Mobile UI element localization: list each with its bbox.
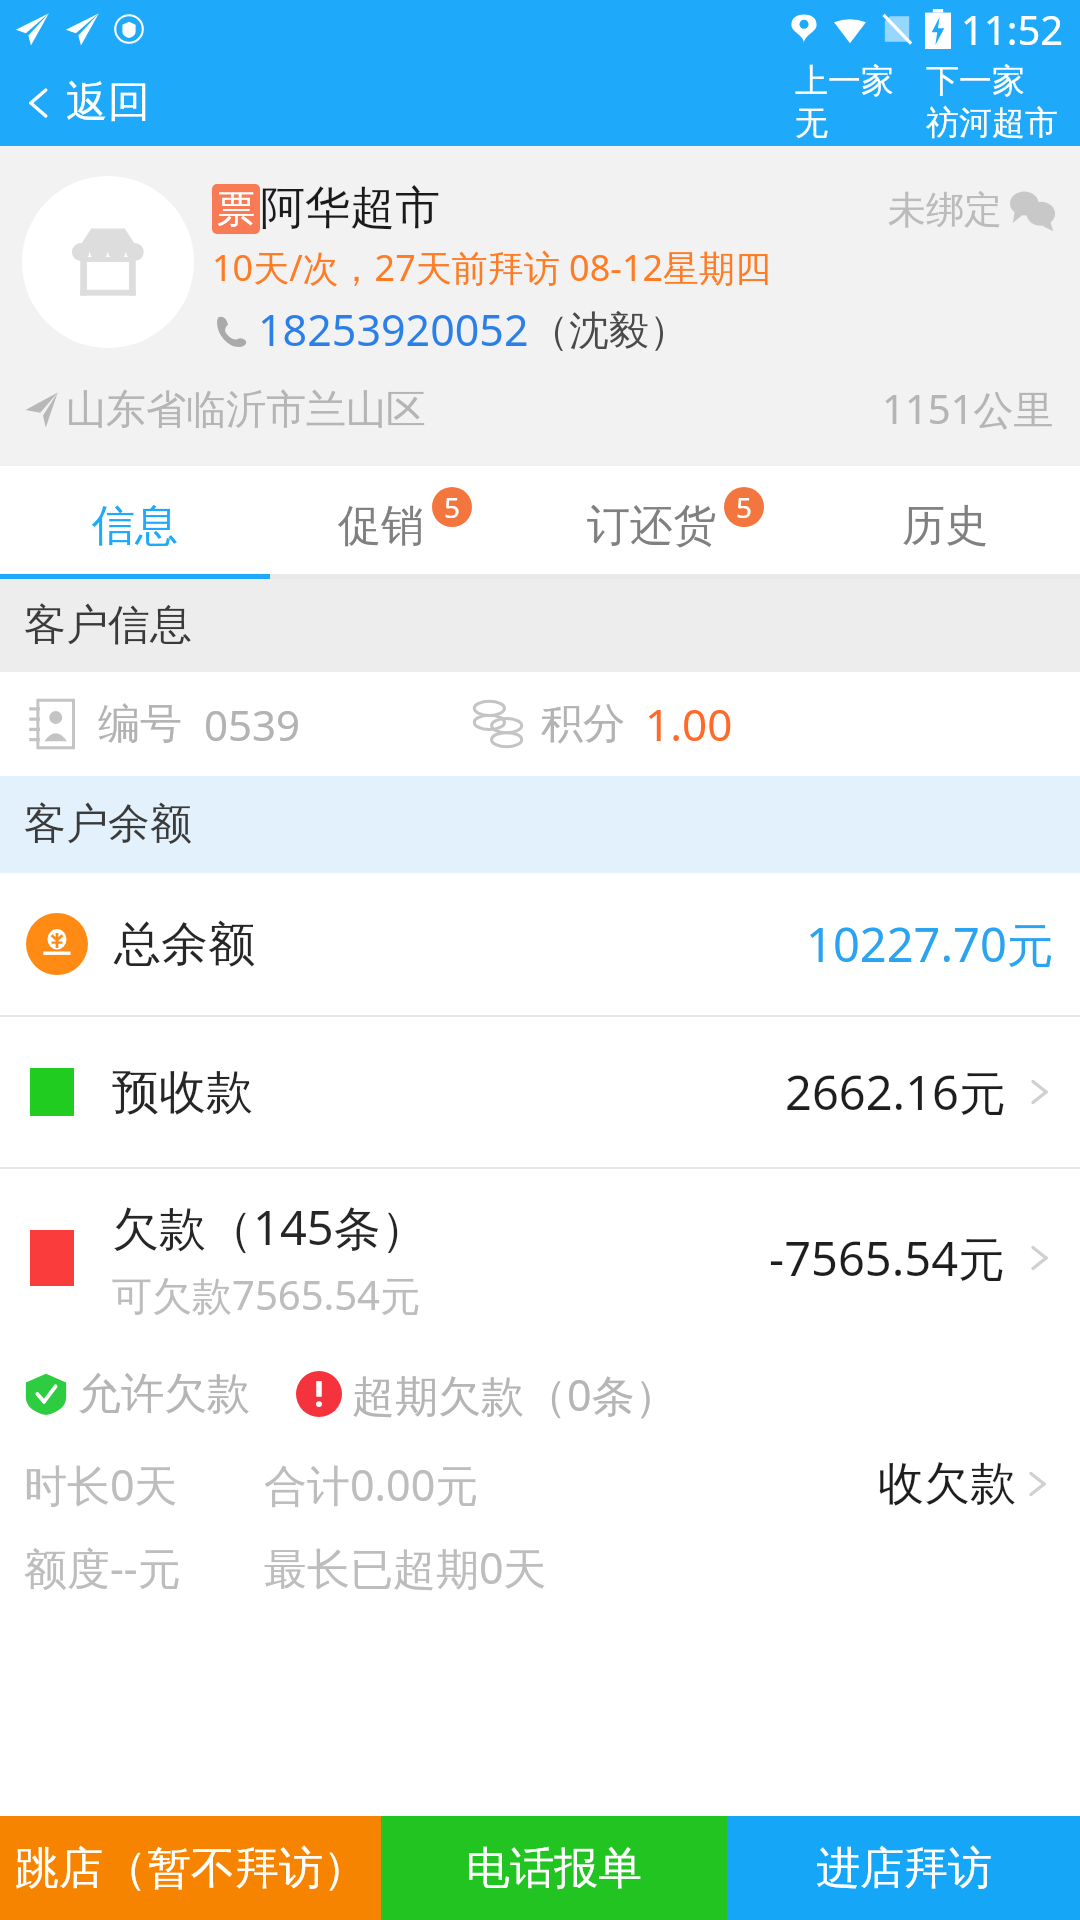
staticText: 无 xyxy=(795,102,828,144)
staticText: 客户信息 xyxy=(24,599,192,652)
button[interactable]: 上一家 xyxy=(787,60,902,144)
staticText: 可欠款7565.54元 xyxy=(112,1267,420,1322)
staticText: 欠款（145条） xyxy=(112,1195,428,1259)
button[interactable]: 进店拜访 xyxy=(727,1816,1080,1920)
staticText: 1151公里 xyxy=(882,381,1054,436)
staticText: 1.00 xyxy=(645,694,733,754)
button[interactable]: 18253920052 xyxy=(212,300,689,359)
other: 微信 xyxy=(1010,187,1056,233)
button[interactable] xyxy=(22,176,194,348)
button[interactable]: 总余额 xyxy=(0,873,1080,1015)
staticText: 订还货 xyxy=(587,499,716,553)
staticText: 客户余额 xyxy=(24,798,192,851)
button[interactable]: 编号 xyxy=(0,672,1080,776)
staticText: 编号 xyxy=(98,698,182,751)
button[interactable]: 信息 xyxy=(0,466,270,574)
staticText: 历史 xyxy=(902,499,988,553)
button[interactable]: 收欠款 xyxy=(872,1455,1066,1513)
staticText: 时长0天 xyxy=(24,1455,264,1514)
button[interactable]: 历史 xyxy=(810,466,1080,574)
button[interactable]: 预收款 xyxy=(0,1017,1080,1167)
staticText: 额度--元 xyxy=(24,1538,264,1597)
staticText: 10天/次，27天前拜访 08-12星期四 xyxy=(212,243,772,292)
staticText: 最长已超期0天 xyxy=(264,1538,547,1597)
staticText: 上一家 xyxy=(795,60,894,102)
staticText: （沈毅） xyxy=(529,305,689,355)
staticText: 下一家 xyxy=(926,60,1025,102)
staticText: 促销 xyxy=(338,499,424,553)
staticText: 收欠款 xyxy=(878,1455,1016,1513)
staticText: 未绑定 xyxy=(888,186,1002,234)
staticText: 票 xyxy=(217,185,255,233)
staticText: 山东省临沂市兰山区 xyxy=(66,384,426,434)
staticText: 进店拜访 xyxy=(816,1841,992,1896)
button[interactable]: 订还货 xyxy=(540,466,810,574)
button[interactable]: 未绑定 xyxy=(888,186,1056,234)
staticText: 电话报单 xyxy=(466,1841,642,1896)
staticText: 11:52 xyxy=(961,2,1064,56)
staticText: 返回 xyxy=(66,76,150,129)
staticText: 超期欠款（0条） xyxy=(352,1365,678,1424)
staticText: 18253920052 xyxy=(258,300,529,359)
staticText: 阿华超市 xyxy=(260,180,440,237)
button[interactable]: 电话报单 xyxy=(381,1816,727,1920)
staticText: 0539 xyxy=(204,696,301,753)
staticText: 预收款 xyxy=(112,1063,253,1122)
staticText: 积分 xyxy=(541,698,625,751)
staticText: -7565.54元 xyxy=(769,1226,1006,1290)
button[interactable]: 下一家 xyxy=(920,60,1064,144)
staticText: 5 xyxy=(444,488,461,526)
staticText: 信息 xyxy=(92,499,178,553)
staticText: 跳店（暂不拜访） xyxy=(15,1841,367,1896)
button[interactable]: 欠款（145条） xyxy=(0,1169,1080,1347)
staticText: 2662.16元 xyxy=(785,1060,1006,1124)
button[interactable]: 返回 xyxy=(0,68,172,137)
staticText: 5 xyxy=(736,488,753,526)
staticText: 总余额 xyxy=(114,915,255,974)
button[interactable]: 促销 xyxy=(270,466,540,574)
staticText: 祊河超市 xyxy=(926,102,1058,144)
staticText: 10227.70元 xyxy=(806,912,1054,976)
staticText: 合计0.00元 xyxy=(264,1455,479,1514)
staticText: 允许欠款 xyxy=(78,1367,250,1421)
button[interactable]: 跳店（暂不拜访） xyxy=(0,1816,381,1920)
